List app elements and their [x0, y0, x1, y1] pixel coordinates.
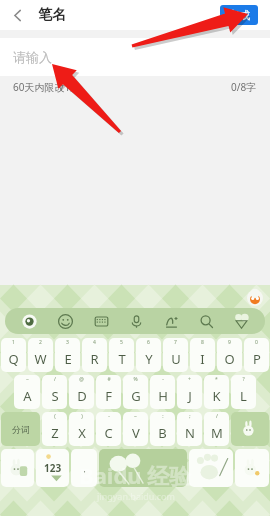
button[interactable]: %	[123, 375, 148, 409]
button[interactable]: 完成	[220, 5, 258, 25]
staticText: 6	[147, 339, 150, 346]
button[interactable]: @	[69, 375, 94, 409]
staticText: (	[54, 413, 56, 420]
staticText: D	[77, 387, 87, 405]
staticText: ~	[26, 376, 29, 383]
button[interactable]: ，	[71, 449, 97, 487]
button[interactable]: Sticker	[247, 290, 263, 306]
staticText: K	[212, 387, 221, 405]
staticText: /	[216, 413, 218, 420]
staticText: 2	[39, 339, 42, 346]
button[interactable]: Symbols	[1, 449, 34, 487]
staticText: O	[224, 350, 235, 368]
button[interactable]: 4	[82, 338, 107, 372]
button[interactable]: 7	[163, 338, 188, 372]
staticText: 9	[228, 339, 231, 346]
button[interactable]: Emoji	[47, 308, 83, 334]
staticText: G	[131, 387, 141, 405]
staticText: 60天内限改1次	[13, 80, 81, 94]
staticText: X	[78, 424, 86, 442]
button[interactable]: ?	[231, 375, 256, 409]
staticText: *	[215, 376, 218, 383]
staticText: 请输入	[13, 49, 52, 65]
staticText: 5	[120, 339, 123, 346]
staticText: 3	[66, 339, 69, 346]
button[interactable]: 5	[109, 338, 134, 372]
staticText: ~	[134, 413, 137, 420]
staticText: M	[211, 424, 223, 442]
staticText: jingyan.baidu.com	[97, 490, 175, 502]
staticText: H	[158, 387, 168, 405]
button[interactable]: -	[150, 375, 175, 409]
button[interactable]: Space	[99, 449, 187, 487]
button[interactable]: /	[42, 375, 67, 409]
button[interactable]: :	[150, 412, 175, 446]
staticText: 0	[255, 339, 258, 346]
button[interactable]: 8	[190, 338, 215, 372]
button[interactable]: 0	[244, 338, 269, 372]
staticText: -	[162, 376, 164, 383]
button[interactable]: Keyboard	[83, 308, 119, 334]
staticText: I	[200, 350, 205, 368]
button[interactable]: 123	[36, 449, 69, 487]
button[interactable]: (	[42, 412, 67, 446]
button[interactable]: /	[204, 412, 229, 446]
button[interactable]: More symbols	[189, 449, 233, 487]
button[interactable]: ;	[177, 412, 202, 446]
button[interactable]: 请输入	[0, 38, 270, 76]
button[interactable]: 3	[55, 338, 80, 372]
staticText: R	[90, 350, 99, 368]
staticText: :	[162, 413, 164, 420]
staticText: @	[79, 376, 84, 383]
button[interactable]: 6	[136, 338, 161, 372]
staticText: T	[118, 350, 126, 368]
button[interactable]: Voice input	[119, 308, 154, 334]
button[interactable]: 1	[1, 338, 26, 372]
staticText: 0/8字	[231, 80, 257, 94]
staticText: ;	[189, 413, 191, 420]
staticText: A	[23, 387, 32, 405]
staticText: -	[108, 413, 110, 420]
button[interactable]: +	[177, 375, 202, 409]
staticText: 123	[44, 461, 62, 475]
button[interactable]: Sogou input	[11, 308, 47, 334]
button[interactable]: )	[69, 412, 94, 446]
button[interactable]: Backspace	[231, 412, 269, 446]
staticText: +	[188, 376, 191, 383]
staticText: L	[240, 387, 247, 405]
staticText: Y	[145, 350, 153, 368]
staticText: 7	[174, 339, 177, 346]
staticText: %	[133, 376, 138, 383]
button[interactable]: 分词	[1, 412, 40, 446]
button[interactable]: 9	[217, 338, 242, 372]
staticText: Baidu 经验	[79, 460, 192, 490]
staticText: 笔名	[38, 6, 66, 24]
staticText: U	[171, 350, 181, 368]
button[interactable]: Search	[189, 308, 224, 334]
staticText: Z	[51, 424, 59, 442]
button[interactable]: Enter	[235, 449, 269, 487]
staticText: E	[64, 350, 72, 368]
button[interactable]: ~	[14, 375, 40, 409]
staticText: F	[105, 387, 112, 405]
staticText: ，	[80, 463, 89, 474]
button[interactable]: Back	[4, 1, 32, 29]
staticText: 1	[12, 339, 15, 346]
staticText: #	[107, 376, 111, 383]
staticText: N	[185, 424, 195, 442]
button[interactable]: Theme	[224, 308, 259, 334]
button[interactable]: #	[96, 375, 121, 409]
staticText: ?	[242, 376, 245, 383]
button[interactable]: *	[204, 375, 229, 409]
staticText: P	[253, 350, 261, 368]
staticText: 8	[201, 339, 204, 346]
button[interactable]: Handwriting	[154, 308, 189, 334]
button[interactable]: -	[96, 412, 121, 446]
staticText: S	[51, 387, 59, 405]
button[interactable]: ~	[123, 412, 148, 446]
staticText: J	[188, 387, 192, 405]
staticText: 分词	[12, 424, 30, 435]
button[interactable]: 2	[28, 338, 53, 372]
staticText: B	[158, 424, 167, 442]
staticText: W	[34, 350, 47, 368]
